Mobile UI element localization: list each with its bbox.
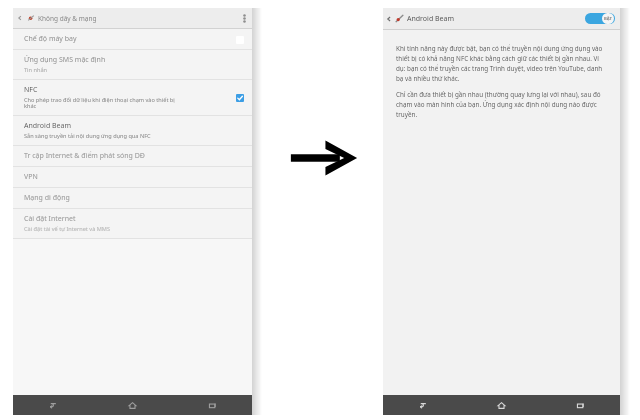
staticText: VPN [24, 172, 38, 182]
staticText: Khi tính năng này được bật, bạn có thể t… [396, 44, 609, 82]
staticText: Chế độ máy bay [24, 34, 77, 44]
staticText: Tr cập Internet & điểm phát sóng DĐ [24, 151, 145, 161]
button[interactable]: Home [462, 395, 541, 415]
staticText: Không dây & mạng [38, 14, 97, 23]
button[interactable]: Recent apps [172, 395, 252, 415]
staticText: Cài đặt tài vế tự Internet và MMS [24, 225, 110, 233]
button[interactable]: Android Beam on [585, 13, 615, 24]
button[interactable]: Back [13, 8, 27, 28]
staticText: Ứng dụng SMS mặc định [24, 55, 106, 65]
staticText: NFC [24, 85, 38, 95]
staticText: Cho phép trao đổi dữ liệu khi điện thoại… [24, 96, 175, 110]
button[interactable]: Back [383, 8, 395, 29]
staticText: Sẵn sàng truyền tải nội dung ứng dụng qu… [24, 132, 151, 140]
button[interactable]: Cài đặt Internet [13, 209, 252, 239]
staticText: Chỉ cần đưa thiết bị gần nhau (thường qu… [396, 90, 609, 118]
button[interactable]: Toggle NFC [235, 93, 244, 102]
button[interactable]: Ứng dụng SMS mặc định [13, 50, 252, 80]
staticText: Tin nhắn [24, 66, 47, 74]
button[interactable]: Back [383, 395, 462, 415]
staticText: Mạng di động [24, 193, 70, 203]
staticText: Cài đặt Internet [24, 214, 76, 224]
button[interactable]: Toggle Chế độ máy bay [235, 35, 244, 44]
button[interactable]: VPN [13, 167, 252, 188]
staticText: BẬT [604, 16, 612, 22]
button[interactable]: More options [236, 8, 252, 28]
button[interactable]: Mạng di động [13, 188, 252, 209]
button[interactable]: Home [92, 395, 172, 415]
button[interactable]: NFC [13, 80, 252, 116]
button[interactable]: Back [13, 395, 92, 415]
button[interactable]: Android Beam [13, 116, 252, 146]
button[interactable]: Tr cập Internet & điểm phát sóng DĐ [13, 146, 252, 167]
staticText: Android Beam [407, 14, 454, 24]
button[interactable]: Chế độ máy bay [13, 29, 252, 50]
button[interactable]: Recent apps [541, 395, 620, 415]
staticText: Android Beam [24, 121, 71, 131]
